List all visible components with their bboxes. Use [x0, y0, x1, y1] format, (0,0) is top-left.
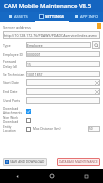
button[interactable]: [26, 97, 100, 104]
button[interactable]: 50: [88, 126, 100, 132]
staticText: ASSETS: [14, 14, 28, 19]
button[interactable]: Entity Location Bearing: [3, 125, 31, 133]
staticText: SETTINGS: [45, 14, 65, 19]
staticText: End Date: [3, 89, 18, 94]
staticText: DATABASE MAINTENANCE: [59, 160, 98, 164]
button[interactable]: SAVE AND DOWNLOAD: [3, 158, 47, 166]
button[interactable]: Non Work Download: [3, 116, 100, 124]
staticText: 50: [89, 127, 93, 131]
button[interactable]: Clear: [94, 89, 99, 94]
staticText: Entity Location Bearing: [3, 125, 25, 133]
button[interactable]: Home: [35, 169, 69, 183]
button[interactable]: Recents: [69, 169, 103, 183]
button[interactable]: Clear: [26, 79, 100, 86]
staticText: Server address: [3, 25, 31, 30]
staticText: SAVE AND DOWNLOAD: [10, 160, 45, 164]
staticText: Used Parts: [3, 98, 21, 103]
button[interactable]: Clear: [94, 80, 99, 85]
button[interactable]: APP INFO: [69, 12, 103, 21]
staticText: 10011857: [27, 72, 43, 77]
button[interactable]: http://10.128.172.76/PDAWS/PDADCAservice…: [3, 31, 100, 39]
staticText: Type: [3, 43, 11, 48]
staticText: Se Technician: [3, 72, 25, 77]
button[interactable]: ASSETS: [0, 12, 35, 21]
staticText: 15: [27, 62, 31, 67]
staticText: Employee ID: [3, 52, 24, 57]
button[interactable]: SETTINGS: [35, 12, 69, 21]
staticText: CAM Mobile Maintenance V8.5: [4, 2, 92, 10]
staticText: Download Attachments: [3, 107, 25, 115]
staticText: Start Date: [3, 80, 20, 85]
button[interactable]: Search: [92, 41, 100, 49]
staticText: 0000001: [27, 52, 41, 57]
staticText: Forward Delay (d): [3, 59, 25, 69]
button[interactable]: Employee: [26, 42, 91, 48]
button[interactable]: Back: [0, 169, 35, 183]
staticText: APP INFO: [80, 14, 99, 19]
button[interactable]: 15: [26, 61, 100, 67]
button[interactable]: 0000001: [26, 51, 100, 57]
staticText: Non Work Download: [3, 116, 25, 124]
staticText: http://10.128.172.76/PDAWS/PDADCAservice…: [4, 33, 97, 38]
button[interactable]: Clear: [26, 88, 100, 95]
staticText: Employee: [27, 43, 43, 48]
button[interactable]: 10011857: [26, 71, 100, 77]
staticText: Max Distance (km): [33, 127, 61, 131]
button[interactable]: DATABASE MAINTENANCE: [57, 158, 100, 166]
button[interactable]: Download Attachments: [3, 107, 100, 115]
